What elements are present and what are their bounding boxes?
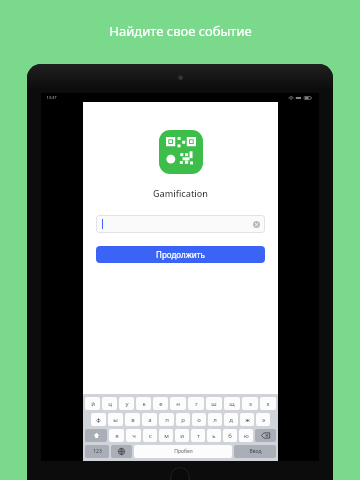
staticText: х [266, 400, 270, 408]
staticText: и [180, 432, 184, 440]
button[interactable]: Shift [85, 429, 107, 442]
button[interactable]: Ввод [234, 445, 276, 458]
staticText: ц [108, 400, 112, 408]
button[interactable]: к [136, 397, 151, 410]
button[interactable]: ь [207, 429, 221, 442]
button[interactable]: Пробел [134, 445, 232, 458]
button[interactable]: у [119, 397, 134, 410]
button[interactable]: Clear text [253, 221, 260, 228]
staticText: ф [96, 416, 101, 424]
button[interactable]: ч [126, 429, 141, 442]
button[interactable]: г [188, 397, 204, 410]
button[interactable]: х [260, 397, 276, 410]
staticText: р [181, 416, 185, 424]
button[interactable]: я [109, 429, 124, 442]
staticText: Продолжить [156, 249, 205, 260]
button[interactable]: р [176, 413, 190, 426]
button[interactable]: Продолжить [96, 246, 265, 263]
staticText: п [165, 416, 169, 424]
staticText: д [229, 416, 233, 424]
button[interactable]: а [142, 413, 157, 426]
staticText: Пробел [174, 448, 193, 455]
button[interactable]: ж [240, 413, 254, 426]
staticText: ь [212, 432, 216, 440]
staticText: л [213, 416, 217, 424]
staticText: б [228, 432, 232, 440]
button[interactable]: и [175, 429, 189, 442]
button[interactable]: м [159, 429, 173, 442]
staticText: к [142, 400, 146, 408]
staticText: Gamification [153, 187, 208, 199]
button[interactable]: е [153, 397, 168, 410]
staticText: ю [244, 432, 249, 440]
staticText: ш [211, 400, 217, 408]
button[interactable]: л [208, 413, 222, 426]
button[interactable]: з [242, 397, 258, 410]
button[interactable]: ы [108, 413, 123, 426]
button[interactable]: о [192, 413, 206, 426]
button[interactable]: н [170, 397, 186, 410]
staticText: 13:37 [46, 95, 57, 100]
button[interactable]: Home [170, 467, 190, 480]
button[interactable]: щ [224, 397, 240, 410]
button[interactable]: с [143, 429, 157, 442]
button[interactable]: й [85, 397, 100, 410]
button[interactable]: б [223, 429, 237, 442]
button[interactable]: Backspace [255, 429, 276, 442]
staticText: в [131, 416, 135, 424]
button[interactable]: ю [239, 429, 253, 442]
staticText: з [249, 400, 252, 408]
button[interactable]: ф [91, 413, 106, 426]
button[interactable]: 123 [85, 445, 109, 458]
staticText: т [197, 432, 200, 440]
button[interactable]: д [224, 413, 238, 426]
staticText: г [195, 400, 198, 408]
staticText: щ [229, 400, 235, 408]
staticText: м [164, 432, 169, 440]
staticText: э [262, 416, 265, 424]
button[interactable]: Switch language [111, 445, 132, 458]
staticText: у [125, 400, 129, 408]
button[interactable]: Event code input [96, 215, 265, 233]
staticText: о [197, 416, 201, 424]
staticText: с [149, 432, 152, 440]
staticText: ч [132, 432, 136, 440]
staticText: Найдите свое событие [109, 22, 252, 40]
staticText: а [148, 416, 152, 424]
staticText: ж [245, 416, 250, 424]
staticText: Ввод [249, 448, 262, 455]
button[interactable]: э [256, 413, 270, 426]
staticText: 123 [93, 448, 102, 455]
button[interactable]: в [125, 413, 140, 426]
staticText: я [115, 432, 119, 440]
staticText: й [91, 400, 95, 408]
button[interactable]: п [159, 413, 174, 426]
staticText: н [176, 400, 180, 408]
button[interactable]: ц [102, 397, 117, 410]
button[interactable]: т [191, 429, 205, 442]
button[interactable]: Gamification app icon [159, 130, 203, 174]
staticText: ы [113, 416, 118, 424]
staticText: е [159, 400, 163, 408]
button[interactable]: ш [206, 397, 222, 410]
